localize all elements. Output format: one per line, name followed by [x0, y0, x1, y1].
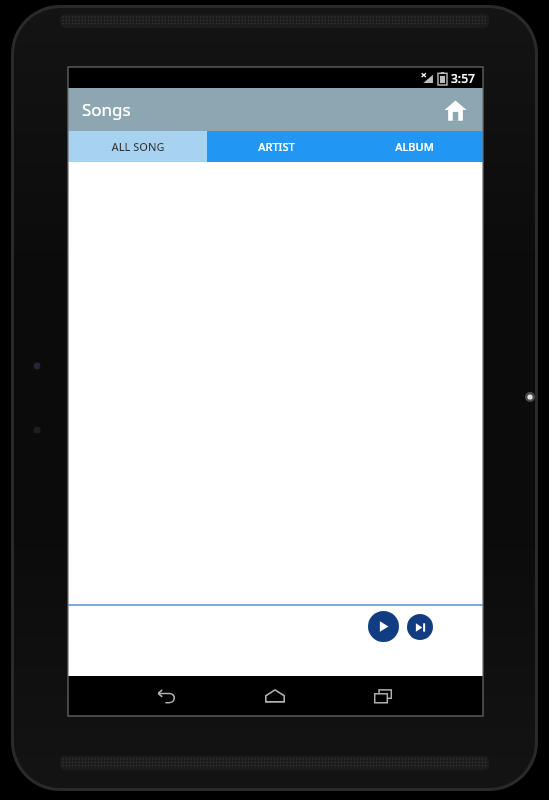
button[interactable]: ALL SONG [68, 131, 207, 162]
button[interactable]: Play [368, 611, 399, 642]
staticText: ALL SONG [111, 139, 165, 154]
button[interactable]: ALBUM [345, 131, 483, 162]
button[interactable]: ARTIST [207, 131, 345, 162]
button[interactable]: Back [144, 676, 190, 716]
staticText: Songs [82, 98, 131, 121]
staticText: 3:57 [451, 70, 475, 86]
staticText: ARTIST [258, 139, 295, 154]
staticText: ALBUM [395, 139, 434, 154]
button[interactable]: Next [407, 614, 433, 640]
button[interactable]: Recent apps [360, 676, 406, 716]
button[interactable]: Home [437, 92, 473, 128]
button[interactable]: Home [252, 676, 298, 716]
